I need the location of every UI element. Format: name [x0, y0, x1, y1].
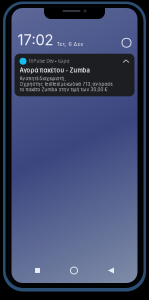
staticText: Τετ, 6 Δεκ: [56, 41, 83, 47]
staticText: 17:02: [17, 31, 53, 49]
button[interactable]: Back: [101, 260, 121, 280]
staticText: Ο χρήστης test test με κωδικό 713, αγόρα…: [19, 81, 112, 87]
button[interactable]: Camera: [120, 37, 132, 49]
button[interactable]: Recents: [28, 261, 47, 280]
staticText: το πακέτο Zumba στην τιμή των 30,00 €: [19, 87, 107, 92]
button[interactable]: fit Pulse Dev • τώρα: [14, 54, 134, 96]
staticText: fit Pulse Dev • τώρα: [28, 59, 69, 64]
staticText: Αγαπητέ διαχειριστή,: [19, 76, 65, 81]
button[interactable]: Home: [63, 260, 84, 281]
staticText: Αγορά πακέτου - Zumba: [19, 67, 89, 74]
